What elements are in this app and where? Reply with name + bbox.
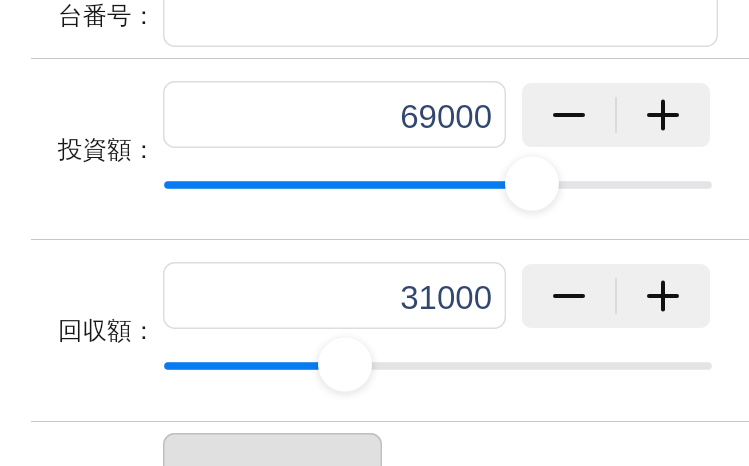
button[interactable]: Increase investment [616, 83, 710, 147]
staticText: 31000 [400, 279, 492, 316]
staticText: 台番号： [58, 0, 156, 31]
staticText: 回収額： [58, 315, 156, 346]
button[interactable]: Input field [163, 81, 506, 148]
button[interactable]: Increase payout [616, 264, 710, 328]
button[interactable]: Decrease investment [522, 83, 616, 147]
staticText: 69000 [400, 98, 492, 135]
button[interactable]: Payout amount [132, 331, 744, 401]
button[interactable]: Decrease payout [522, 264, 616, 328]
button[interactable]: Input field [163, 262, 506, 329]
button[interactable]: Investment amount [132, 150, 744, 220]
button[interactable]: Submit [163, 433, 382, 466]
staticText: 投資額： [58, 134, 156, 165]
button[interactable]: Input field [163, 0, 718, 47]
